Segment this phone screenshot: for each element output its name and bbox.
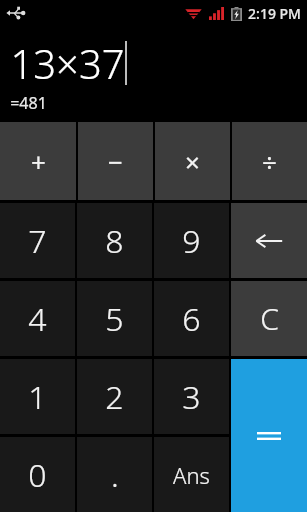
button[interactable]: 1	[0, 359, 75, 434]
button[interactable]: 3	[154, 359, 229, 434]
staticText: ÷	[262, 144, 277, 179]
staticText: =481	[10, 92, 47, 114]
staticText: 8	[105, 219, 124, 263]
staticText: 1	[28, 375, 47, 419]
button[interactable]: 2	[77, 359, 152, 434]
button[interactable]: −	[78, 122, 153, 200]
staticText: 9	[182, 219, 201, 263]
staticText: 3	[182, 375, 201, 419]
staticText: Ans	[173, 460, 210, 490]
button[interactable]: 5	[77, 281, 152, 356]
staticText: 2	[105, 375, 124, 419]
button[interactable]: +	[0, 122, 76, 200]
staticText: ×	[185, 144, 200, 179]
staticText: C	[260, 298, 279, 339]
button[interactable]: ÷	[232, 122, 307, 200]
button[interactable]: 4	[0, 281, 75, 356]
staticText: −	[108, 144, 123, 179]
button[interactable]: 6	[154, 281, 229, 356]
button[interactable]: 0	[0, 437, 75, 512]
button[interactable]: .	[77, 437, 152, 512]
button[interactable]: Backspace	[231, 203, 307, 278]
button[interactable]: Equals	[231, 359, 307, 512]
staticText: 2:19 PM	[248, 4, 301, 23]
button[interactable]: 9	[154, 203, 229, 278]
staticText: 6	[182, 297, 201, 341]
staticText: 5	[105, 297, 124, 341]
button[interactable]: ×	[155, 122, 230, 200]
button[interactable]: Ans	[154, 437, 229, 512]
staticText: .	[111, 453, 119, 497]
button[interactable]: C	[231, 281, 307, 356]
button[interactable]: 7	[0, 203, 75, 278]
staticText: 7	[28, 219, 47, 263]
button[interactable]: 8	[77, 203, 152, 278]
staticText: 4	[28, 297, 47, 341]
staticText: 13×37	[10, 36, 125, 90]
staticText: +	[31, 144, 46, 179]
staticText: 0	[28, 453, 47, 497]
